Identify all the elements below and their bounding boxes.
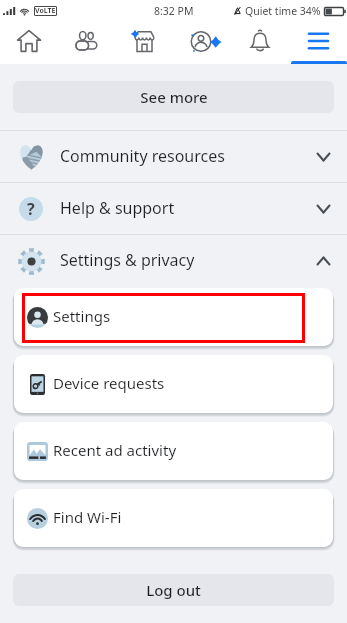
staticText: Community resources — [60, 145, 225, 167]
button[interactable]: ? — [0, 183, 347, 234]
staticText: Settings & privacy — [60, 249, 195, 271]
button[interactable]: Profile — [173, 22, 231, 64]
staticText: Settings — [53, 306, 111, 326]
button[interactable]: Marketplace — [115, 22, 173, 64]
staticText: VoLTE — [35, 6, 56, 16]
staticText: Device requests — [53, 373, 165, 393]
button[interactable]: Notifications — [231, 22, 289, 64]
button[interactable]: Home — [0, 22, 57, 64]
button[interactable]: Find Wi-Fi — [14, 489, 333, 547]
staticText: Log out — [146, 580, 201, 600]
staticText: 8:32 PM — [154, 4, 194, 18]
staticText: See more — [140, 87, 208, 107]
button[interactable]: Menu — [289, 22, 347, 64]
button[interactable]: Log out — [13, 574, 334, 606]
button[interactable]: See more — [13, 81, 334, 113]
button[interactable]: Device requests — [14, 355, 333, 413]
staticText: Recent ad activity — [53, 440, 177, 460]
button[interactable]: Community resources — [0, 131, 347, 182]
staticText: Help & support — [60, 197, 175, 219]
button[interactable]: Settings — [14, 288, 333, 346]
button[interactable]: Friends — [57, 22, 115, 64]
button[interactable]: Recent ad activity — [14, 422, 333, 480]
button[interactable]: Settings & privacy — [0, 235, 347, 286]
staticText: Quiet time 34% — [245, 4, 321, 18]
staticText: Find Wi-Fi — [53, 507, 122, 527]
staticText: ? — [27, 198, 35, 220]
